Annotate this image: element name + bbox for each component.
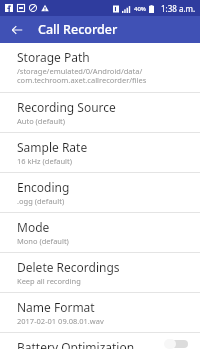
staticText: Call Recorder bbox=[38, 21, 118, 38]
button[interactable]: Battery Optimization bbox=[0, 333, 200, 355]
staticText: Encoding bbox=[17, 179, 70, 195]
staticText: Keep all recording bbox=[17, 276, 81, 286]
staticText: 16 kHz (default) bbox=[17, 156, 72, 166]
staticText: Mode bbox=[17, 219, 50, 235]
staticText: 2017-02-01 09.08.01.wav bbox=[17, 316, 104, 326]
staticText: Delete Recordings bbox=[17, 259, 120, 275]
staticText: /storage/emulated/0/Android/data/ com.te… bbox=[17, 66, 147, 86]
staticText: 40% bbox=[134, 5, 146, 13]
staticText: 1:38 a.m. bbox=[161, 3, 196, 14]
staticText: Battery Optimization bbox=[17, 339, 135, 349]
button[interactable]: Mode bbox=[0, 213, 200, 252]
button[interactable]: Storage Path bbox=[0, 43, 200, 92]
button[interactable]: Battery Optimization bbox=[160, 339, 192, 349]
staticText: Recording Source bbox=[17, 99, 116, 115]
button[interactable]: Delete Recordings bbox=[0, 253, 200, 292]
staticText: Name Format bbox=[17, 299, 95, 315]
staticText: Auto (default) bbox=[17, 116, 66, 126]
button[interactable]: Sample Rate bbox=[0, 133, 200, 172]
button[interactable]: Recording Source bbox=[0, 93, 200, 132]
staticText: .ogg (default) bbox=[17, 196, 65, 206]
staticText: Sample Rate bbox=[17, 139, 88, 155]
staticText: Mono (default) bbox=[17, 236, 69, 246]
button[interactable]: Name Format bbox=[0, 293, 200, 332]
staticText: Storage Path bbox=[17, 49, 90, 65]
button[interactable]: Back bbox=[6, 19, 28, 41]
button[interactable]: Encoding bbox=[0, 173, 200, 212]
